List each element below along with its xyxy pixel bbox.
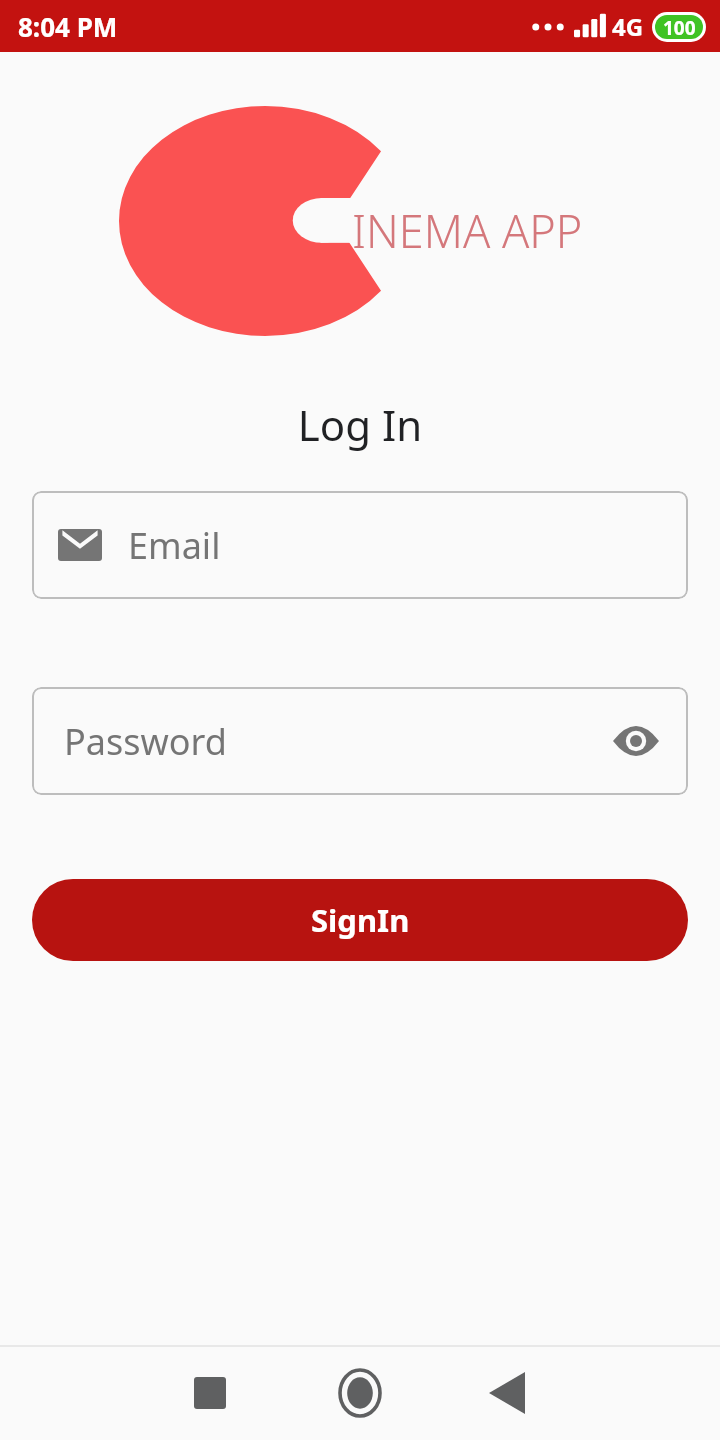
staticText: 100 [663,15,696,39]
button[interactable]: SignIn [32,879,688,961]
staticText: SignIn [311,899,410,941]
staticText: Password [64,717,227,766]
staticText: Log In [0,396,720,453]
staticText: INEMA APP [352,200,583,261]
staticText: 4G [612,10,644,43]
staticText: Email [128,521,221,570]
button[interactable]: Show password [608,713,664,769]
staticText: 8:04 PM [18,9,118,44]
button[interactable]: Email [32,491,688,599]
button[interactable]: Password [32,687,688,795]
button[interactable]: Back [471,1357,543,1429]
button[interactable]: Recent apps [174,1357,246,1429]
button[interactable]: Home [324,1357,396,1429]
